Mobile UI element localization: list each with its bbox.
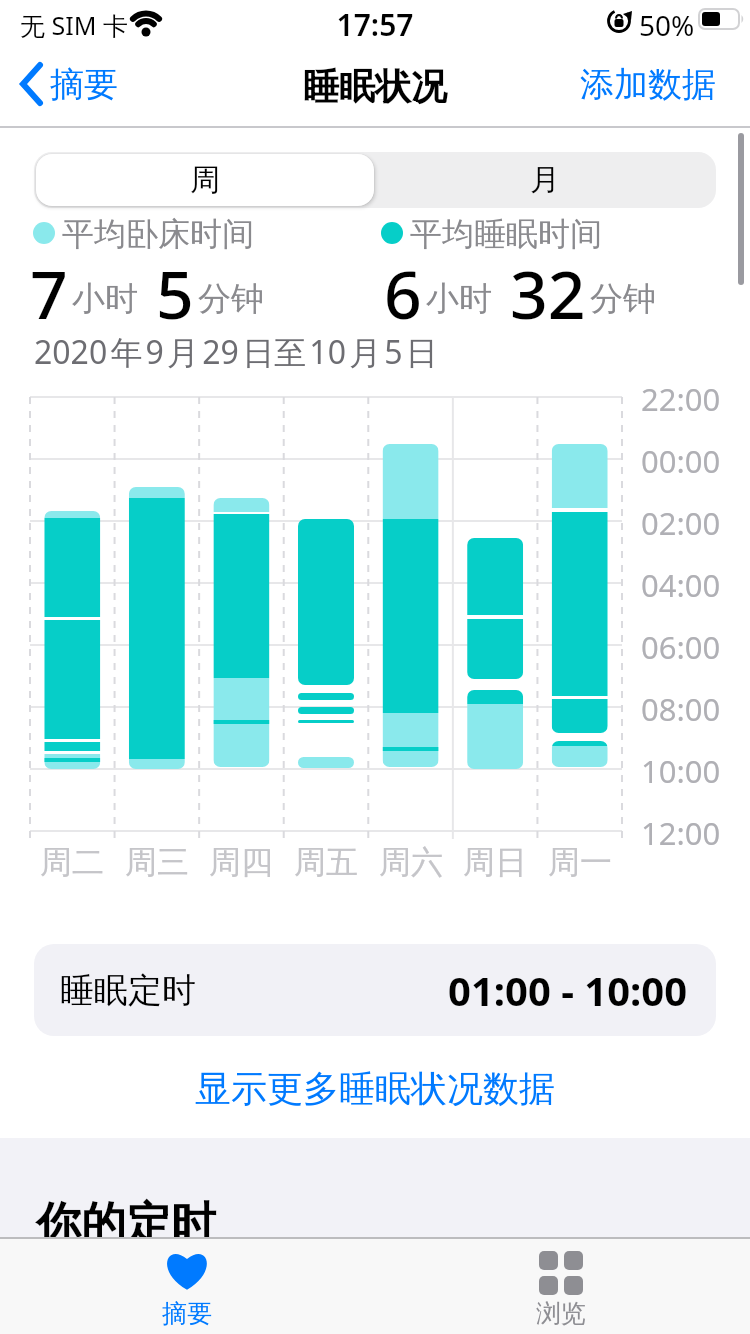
staticText: 你的定时 bbox=[36, 1196, 216, 1253]
staticText: 周五 bbox=[281, 842, 371, 882]
staticText: 02:00 bbox=[641, 502, 721, 544]
staticText: 显示更多睡眠状况数据 bbox=[195, 1066, 555, 1111]
button[interactable]: 周 bbox=[36, 154, 374, 206]
staticText: 小时 bbox=[426, 278, 492, 320]
staticText: 平均卧床时间 bbox=[62, 214, 254, 254]
staticText: 06:00 bbox=[641, 626, 721, 668]
staticText: 周日 bbox=[450, 842, 540, 882]
staticText: 04:00 bbox=[641, 564, 721, 606]
staticText: 08:00 bbox=[641, 688, 721, 730]
staticText: 01:00 - 10:00 bbox=[448, 963, 688, 1017]
staticText: 50% bbox=[639, 6, 695, 44]
button[interactable]: 月 bbox=[374, 154, 716, 206]
button[interactable]: 摘要 bbox=[120, 1239, 254, 1334]
staticText: 32 bbox=[510, 248, 586, 330]
staticText: 摘要 bbox=[50, 63, 118, 106]
staticText: 周三 bbox=[112, 842, 202, 882]
staticText: 10:00 bbox=[641, 750, 721, 792]
staticText: 分钟 bbox=[590, 278, 656, 320]
button[interactable]: 睡眠定时 bbox=[34, 944, 716, 1036]
button[interactable]: 摘要 bbox=[16, 60, 118, 108]
staticText: 17:57 bbox=[0, 4, 750, 45]
staticText: 添加数据 bbox=[580, 63, 716, 106]
button[interactable]: 浏览 bbox=[494, 1239, 628, 1334]
staticText: 小时 bbox=[72, 278, 138, 320]
staticText: 睡眠状况 bbox=[0, 64, 750, 109]
staticText: 周二 bbox=[27, 842, 117, 882]
staticText: 周六 bbox=[366, 842, 456, 882]
staticText: 分钟 bbox=[198, 278, 264, 320]
staticText: 月 bbox=[530, 161, 560, 199]
staticText: 睡眠定时 bbox=[60, 969, 196, 1012]
staticText: 周一 bbox=[535, 842, 625, 882]
staticText: 00:00 bbox=[641, 440, 721, 482]
staticText: 5 bbox=[156, 248, 194, 330]
staticText: 12:00 bbox=[641, 812, 721, 854]
button[interactable]: 添加数据 bbox=[570, 60, 726, 108]
staticText: 浏览 bbox=[536, 1298, 586, 1329]
staticText: 平均睡眠时间 bbox=[410, 214, 602, 254]
staticText: 2020 年 9 月 29 日至 10 月 5 日 bbox=[34, 330, 438, 374]
staticText: 周 bbox=[190, 161, 220, 199]
staticText: 无 SIM 卡 bbox=[20, 8, 128, 42]
button[interactable]: 显示更多睡眠状况数据 bbox=[0, 1066, 750, 1111]
staticText: 摘要 bbox=[162, 1298, 212, 1329]
staticText: 22:00 bbox=[641, 378, 721, 420]
staticText: 7 bbox=[30, 248, 68, 330]
staticText: 6 bbox=[384, 248, 422, 330]
staticText: 周四 bbox=[196, 842, 286, 882]
